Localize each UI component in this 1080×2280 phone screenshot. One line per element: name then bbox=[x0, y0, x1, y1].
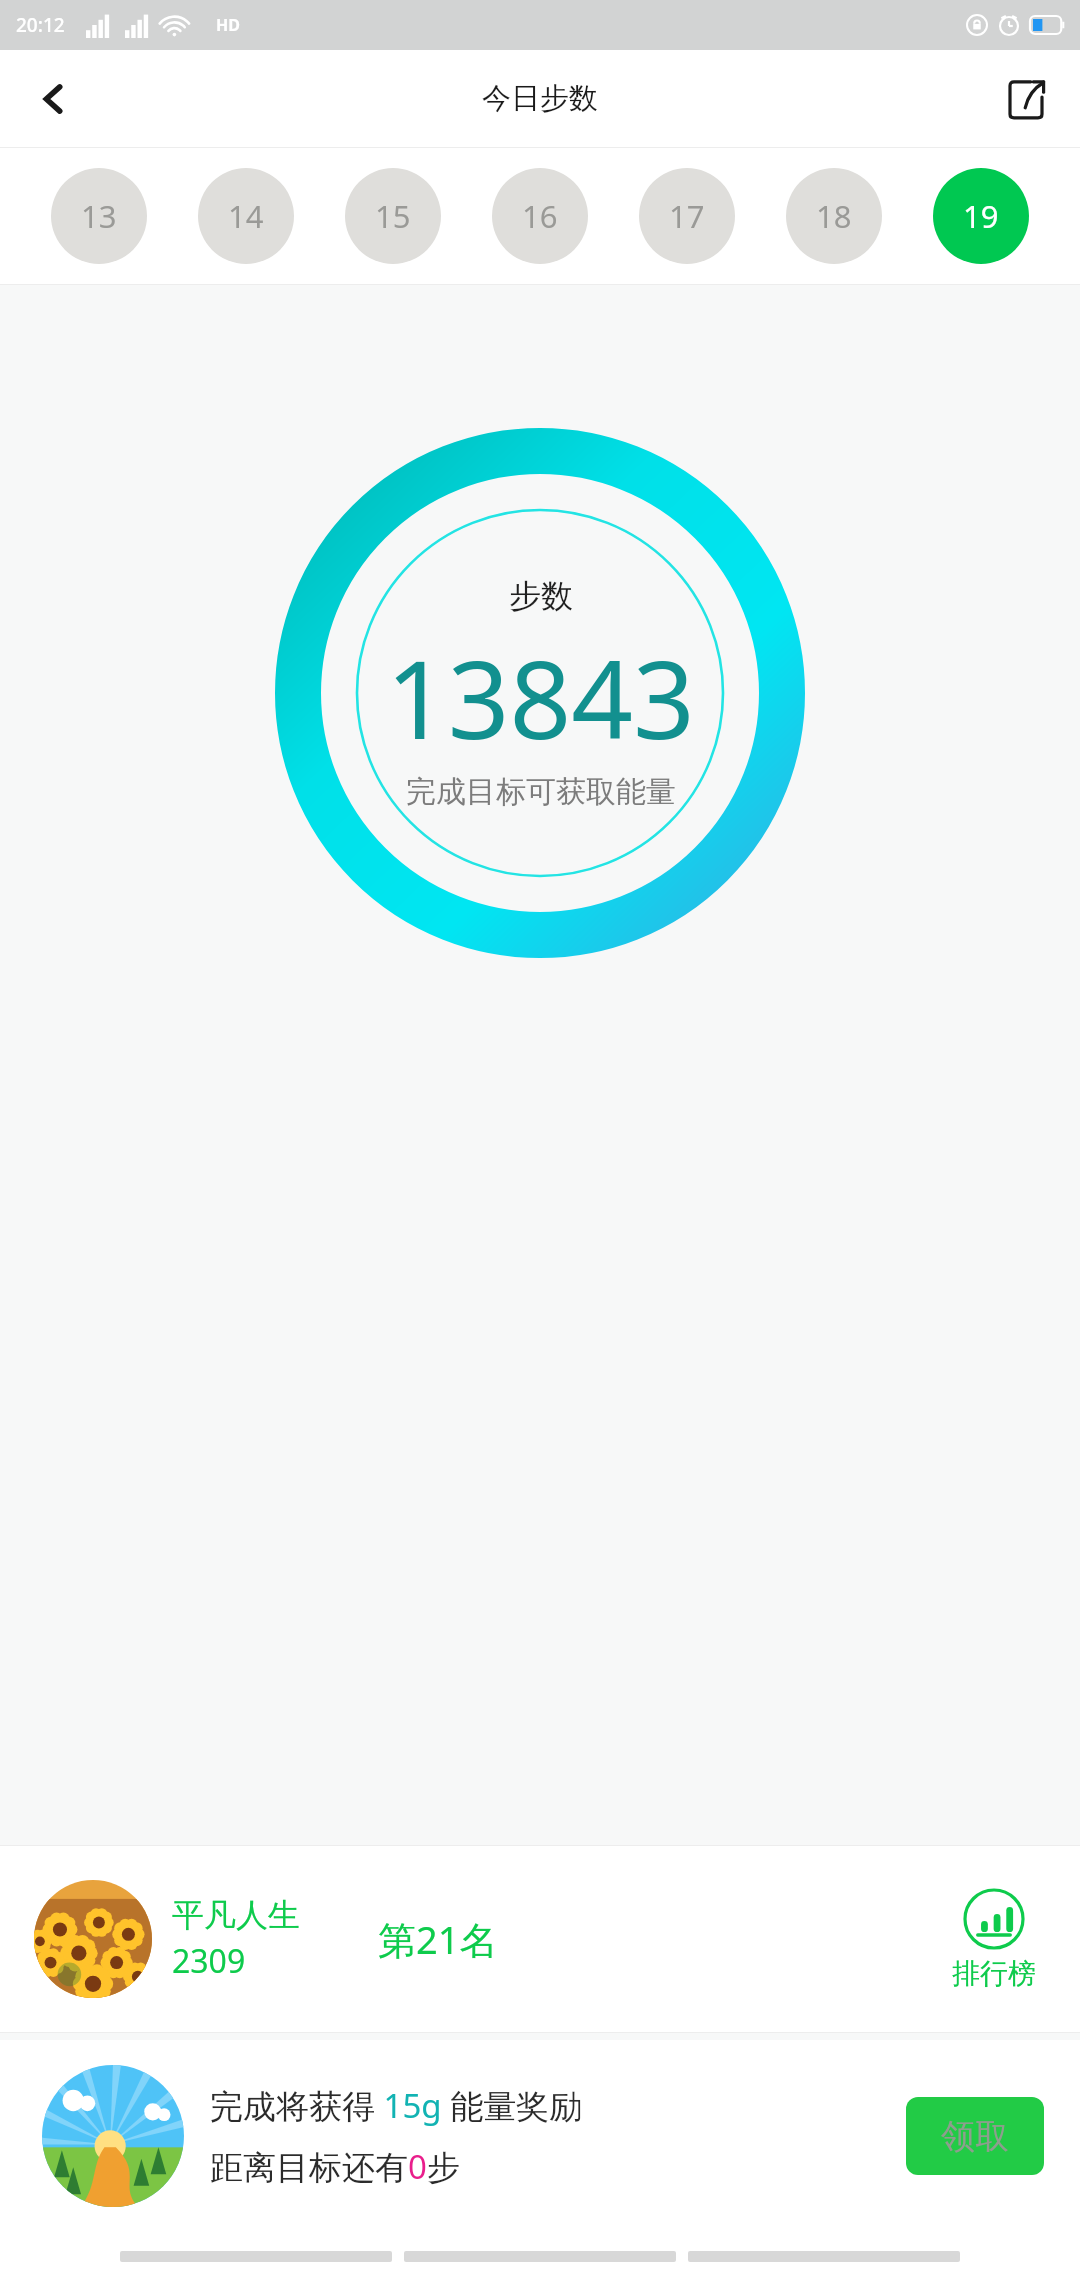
staticText: 第21名 bbox=[378, 1913, 498, 1965]
staticText: 排行榜 bbox=[952, 1956, 1036, 1991]
button[interactable]: 18 bbox=[786, 168, 882, 264]
staticText: 2309 bbox=[172, 1939, 246, 1983]
staticText: 完成将获得 15g 能量奖励 bbox=[210, 2083, 583, 2128]
button[interactable]: 13 bbox=[51, 168, 147, 264]
staticText: HD bbox=[216, 14, 240, 36]
button[interactable]: 16 bbox=[492, 168, 588, 264]
staticText: 14 bbox=[228, 195, 264, 237]
staticText: 13 bbox=[81, 195, 117, 237]
staticText: 17 bbox=[669, 195, 705, 237]
staticText: 完成目标可获取能量 bbox=[406, 773, 676, 811]
staticText: 平凡人生 bbox=[172, 1895, 300, 1935]
staticText: 13843 bbox=[386, 624, 695, 771]
staticText: 15 bbox=[375, 195, 411, 237]
button[interactable]: 19 bbox=[933, 168, 1029, 264]
button[interactable]: 17 bbox=[639, 168, 735, 264]
staticText: 领取 bbox=[941, 2115, 1009, 2158]
button[interactable]: 领取 bbox=[906, 2097, 1044, 2175]
staticText: 18 bbox=[816, 195, 852, 237]
button[interactable]: 平凡人生 bbox=[0, 1846, 1080, 2032]
button[interactable]: Back bbox=[20, 65, 88, 133]
staticText: 19 bbox=[963, 195, 999, 237]
staticText: 16 bbox=[522, 195, 558, 237]
staticText: 20:12 bbox=[16, 12, 65, 38]
staticText: 今日步数 bbox=[482, 80, 598, 117]
button[interactable]: 14 bbox=[198, 168, 294, 264]
button[interactable]: 排行榜 bbox=[952, 1888, 1036, 1991]
button[interactable]: 15 bbox=[345, 168, 441, 264]
button[interactable]: Share bbox=[994, 67, 1058, 131]
staticText: 步数 bbox=[509, 576, 573, 616]
staticText: 距离目标还有0步 bbox=[210, 2144, 460, 2189]
